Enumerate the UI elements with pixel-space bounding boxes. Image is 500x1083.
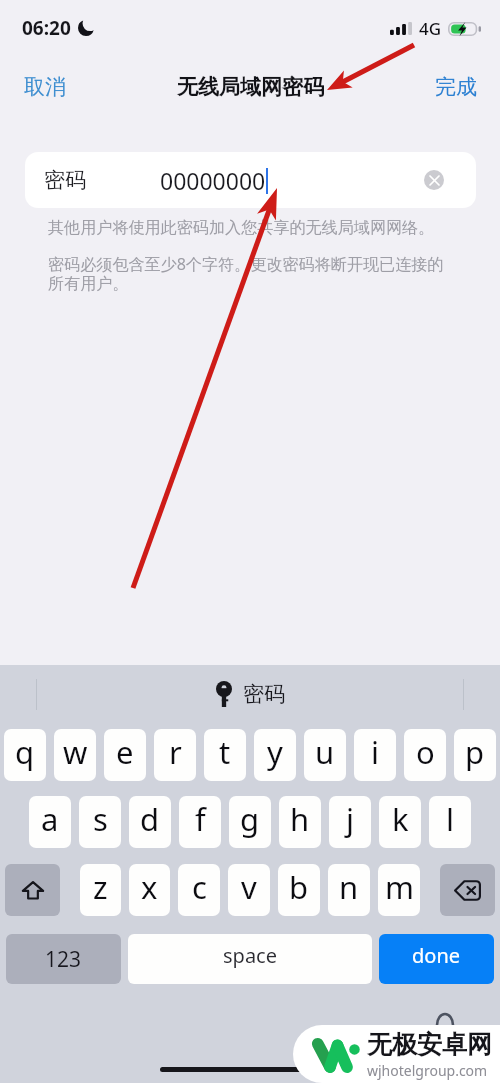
staticText: o [416, 731, 435, 773]
staticText: v [241, 866, 257, 908]
staticText: c [192, 866, 207, 908]
button[interactable]: 密码 [25, 152, 476, 208]
staticText: n [339, 866, 359, 908]
button[interactable]: 取消 [0, 64, 90, 128]
button[interactable]: Backspace [440, 864, 495, 916]
button[interactable]: n [328, 864, 370, 916]
staticText: 4G [419, 17, 442, 40]
button[interactable]: t [204, 729, 246, 781]
staticText: wjhotelgroup.com [367, 1061, 488, 1080]
staticText: e [116, 731, 134, 773]
staticText: p [465, 731, 485, 773]
button[interactable]: k [379, 796, 421, 848]
button[interactable]: p [454, 729, 496, 781]
button[interactable]: e [104, 729, 146, 781]
button[interactable]: v [228, 864, 270, 916]
button[interactable]: x [129, 864, 170, 916]
staticText: u [315, 731, 335, 773]
button[interactable]: c [178, 864, 220, 916]
button[interactable]: o [404, 729, 446, 781]
button[interactable]: z [80, 864, 121, 916]
staticText: 无线局域网密码 [177, 74, 324, 100]
staticText: l [446, 798, 454, 840]
button[interactable]: f [179, 796, 221, 848]
button[interactable]: i [354, 729, 396, 781]
staticText: 密码 [44, 167, 86, 193]
button[interactable]: l [429, 796, 471, 848]
button[interactable]: g [229, 796, 271, 848]
staticText: 完成 [435, 74, 477, 100]
staticText: y [267, 731, 283, 773]
staticText: done [412, 942, 461, 969]
staticText: h [290, 798, 310, 840]
button[interactable]: a [29, 796, 71, 848]
staticText: i [371, 731, 379, 773]
button[interactable]: 123 [6, 934, 121, 984]
button[interactable]: u [304, 729, 346, 781]
staticText: z [93, 866, 108, 908]
button[interactable]: r [154, 729, 196, 781]
staticText: j [346, 798, 354, 840]
staticText: 00000000 [160, 165, 266, 196]
staticText: m [385, 866, 414, 908]
staticText: space [223, 942, 277, 969]
button[interactable]: 完成 [411, 64, 500, 128]
staticText: g [240, 798, 260, 840]
staticText: 密码必须包含至少8个字符。更改密码将断开现已连接的所有用户。 [48, 253, 448, 294]
staticText: 123 [45, 945, 82, 974]
staticText: a [41, 798, 59, 840]
staticText: s [93, 798, 108, 840]
button[interactable]: m [378, 864, 420, 916]
button[interactable]: space [128, 934, 372, 984]
staticText: q [15, 731, 35, 773]
staticText: 06:20 [22, 15, 71, 41]
button[interactable]: j [329, 796, 371, 848]
button[interactable]: h [279, 796, 321, 848]
staticText: x [141, 866, 158, 908]
staticText: 其他用户将使用此密码加入您共享的无线局域网网络。 [48, 217, 435, 237]
staticText: b [289, 866, 309, 908]
button[interactable]: done [379, 934, 494, 984]
staticText: f [195, 798, 206, 840]
button[interactable]: Shift [5, 864, 60, 916]
button[interactable]: d [129, 796, 171, 848]
staticText: 取消 [24, 74, 66, 100]
button[interactable]: q [4, 729, 46, 781]
staticText: r [169, 731, 182, 773]
button[interactable]: s [79, 796, 121, 848]
button[interactable]: w [54, 729, 96, 781]
staticText: 密码 [243, 681, 285, 707]
button[interactable]: b [278, 864, 320, 916]
staticText: 无极安卓网 [367, 1029, 492, 1060]
staticText: k [392, 798, 409, 840]
button[interactable]: 密码 [216, 681, 285, 707]
button[interactable]: Clear text [424, 170, 444, 190]
staticText: d [140, 798, 160, 840]
staticText: w [63, 731, 88, 773]
staticText: t [219, 731, 231, 773]
button[interactable]: y [254, 729, 296, 781]
